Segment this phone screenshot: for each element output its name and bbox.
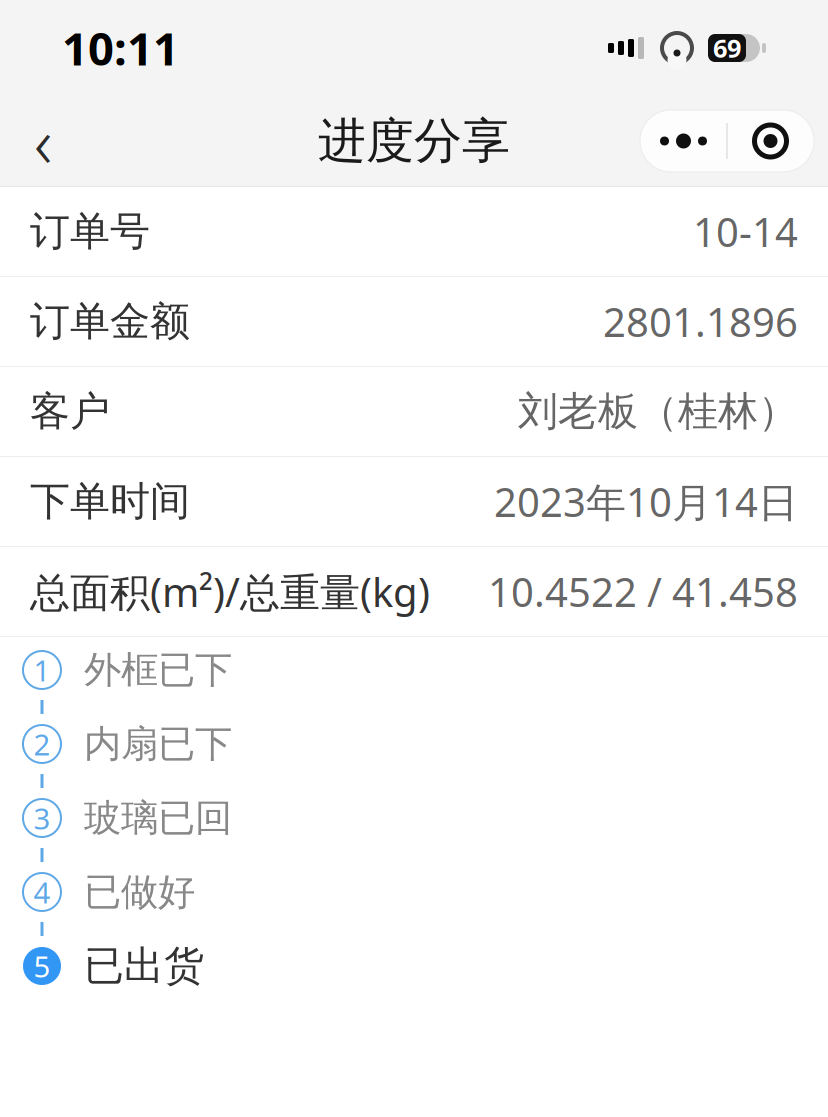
staticText: 刘老板（桂林） — [518, 387, 798, 436]
staticText: 下单时间 — [30, 477, 190, 526]
button[interactable]: Back — [0, 98, 86, 184]
staticText: 已做好 — [84, 869, 195, 915]
staticText: 外框已下 — [84, 647, 232, 693]
staticText: ‹ — [34, 95, 52, 187]
staticText: 10-14 — [693, 205, 798, 258]
staticText: 2 — [33, 724, 50, 763]
staticText: 2023年10月14日 — [494, 475, 798, 528]
staticText: 69 — [713, 31, 741, 65]
button[interactable]: Close mini program — [727, 110, 813, 172]
staticText: 4 — [33, 872, 50, 911]
staticText: 客户 — [30, 387, 110, 436]
staticText: 订单金额 — [30, 297, 190, 346]
staticText: 总面积(m²)/总重量(kg) — [30, 565, 430, 618]
staticText: 2801.1896 — [603, 295, 798, 348]
staticText: 1 — [33, 650, 50, 689]
staticText: 5 — [33, 946, 50, 985]
staticText: 玻璃已回 — [84, 795, 232, 841]
staticText: 已出货 — [84, 941, 204, 990]
button[interactable]: More — [640, 110, 726, 172]
staticText: 3 — [33, 798, 50, 837]
staticText: 10:11 — [62, 18, 179, 78]
staticText: 内扇已下 — [84, 721, 232, 767]
staticText: 订单号 — [30, 207, 150, 256]
staticText: 10.4522 / 41.458 — [488, 565, 798, 618]
staticText: 进度分享 — [318, 111, 510, 170]
